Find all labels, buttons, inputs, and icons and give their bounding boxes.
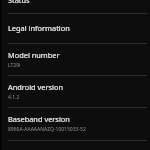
staticText: Baseband version — [8, 114, 70, 124]
button[interactable]: Android version — [0, 76, 150, 107]
staticText: Model number — [8, 50, 60, 60]
staticText: Android version — [8, 82, 64, 92]
button[interactable]: Legal information — [0, 14, 150, 43]
staticText: 4.1.2 — [8, 94, 20, 101]
button[interactable]: Status — [0, 0, 150, 13]
staticText: Status — [8, 0, 30, 5]
staticText: LT29i — [8, 62, 21, 69]
button[interactable]: Model number — [0, 44, 150, 75]
button[interactable]: Baseband version — [0, 108, 150, 140]
staticText: Legal information — [8, 23, 70, 33]
staticText: 8960A-AAAAANAZQ-10015033-52 — [8, 126, 86, 133]
